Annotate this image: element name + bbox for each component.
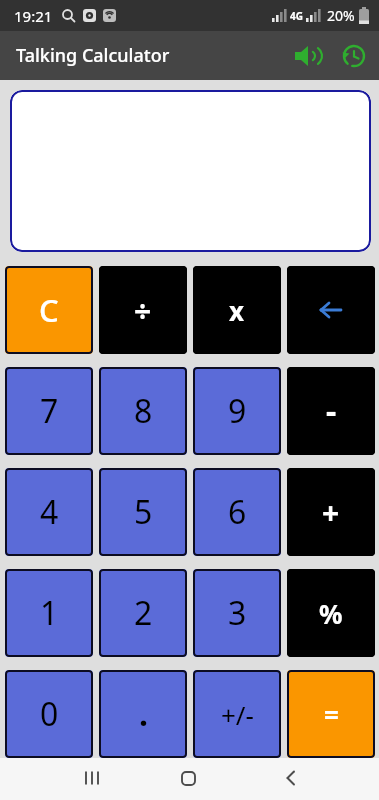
button[interactable]: 5 [99,468,187,556]
staticText: 5 [134,490,153,534]
staticText: 8 [134,389,153,433]
button[interactable] [270,758,310,798]
staticText: % [319,596,343,631]
staticText: 2 [134,591,153,635]
staticText: . [139,692,148,736]
button[interactable]: ÷ [99,266,187,354]
button[interactable] [337,39,371,73]
staticText: +/- [221,697,254,732]
staticText: 3 [228,591,247,635]
staticText: - [326,389,337,433]
button[interactable] [168,758,208,798]
staticText: 0 [40,692,59,736]
button[interactable]: 0 [5,670,93,758]
button[interactable] [72,758,112,798]
staticText: C [39,289,59,331]
button[interactable]: . [99,670,187,758]
button[interactable]: = [287,670,375,758]
button[interactable] [287,266,375,354]
button[interactable]: 4 [5,468,93,556]
button[interactable]: % [287,569,375,657]
button[interactable]: 9 [193,367,281,455]
button[interactable]: 3 [193,569,281,657]
button[interactable] [10,90,371,252]
button[interactable]: 1 [5,569,93,657]
button[interactable]: +/- [193,670,281,758]
staticText: = [324,697,339,732]
staticText: 6 [228,490,247,534]
staticText: 4G [290,9,303,23]
button[interactable]: 8 [99,367,187,455]
staticText: 4 [40,490,59,534]
button[interactable]: - [287,367,375,455]
button[interactable]: 7 [5,367,93,455]
button[interactable]: + [287,468,375,556]
staticText: 7 [40,389,59,433]
staticText: + [322,492,340,533]
staticText: x [229,293,245,328]
button[interactable]: 2 [99,569,187,657]
button[interactable]: 6 [193,468,281,556]
button[interactable] [291,39,325,73]
staticText: 19:21 [14,6,53,26]
button[interactable]: C [5,266,93,354]
staticText: Talking Calculator [16,43,170,68]
staticText: ÷ [134,290,152,331]
staticText: 9 [228,389,247,433]
staticText: 1 [40,591,59,635]
staticText: 20% [327,6,355,25]
button[interactable]: x [193,266,281,354]
